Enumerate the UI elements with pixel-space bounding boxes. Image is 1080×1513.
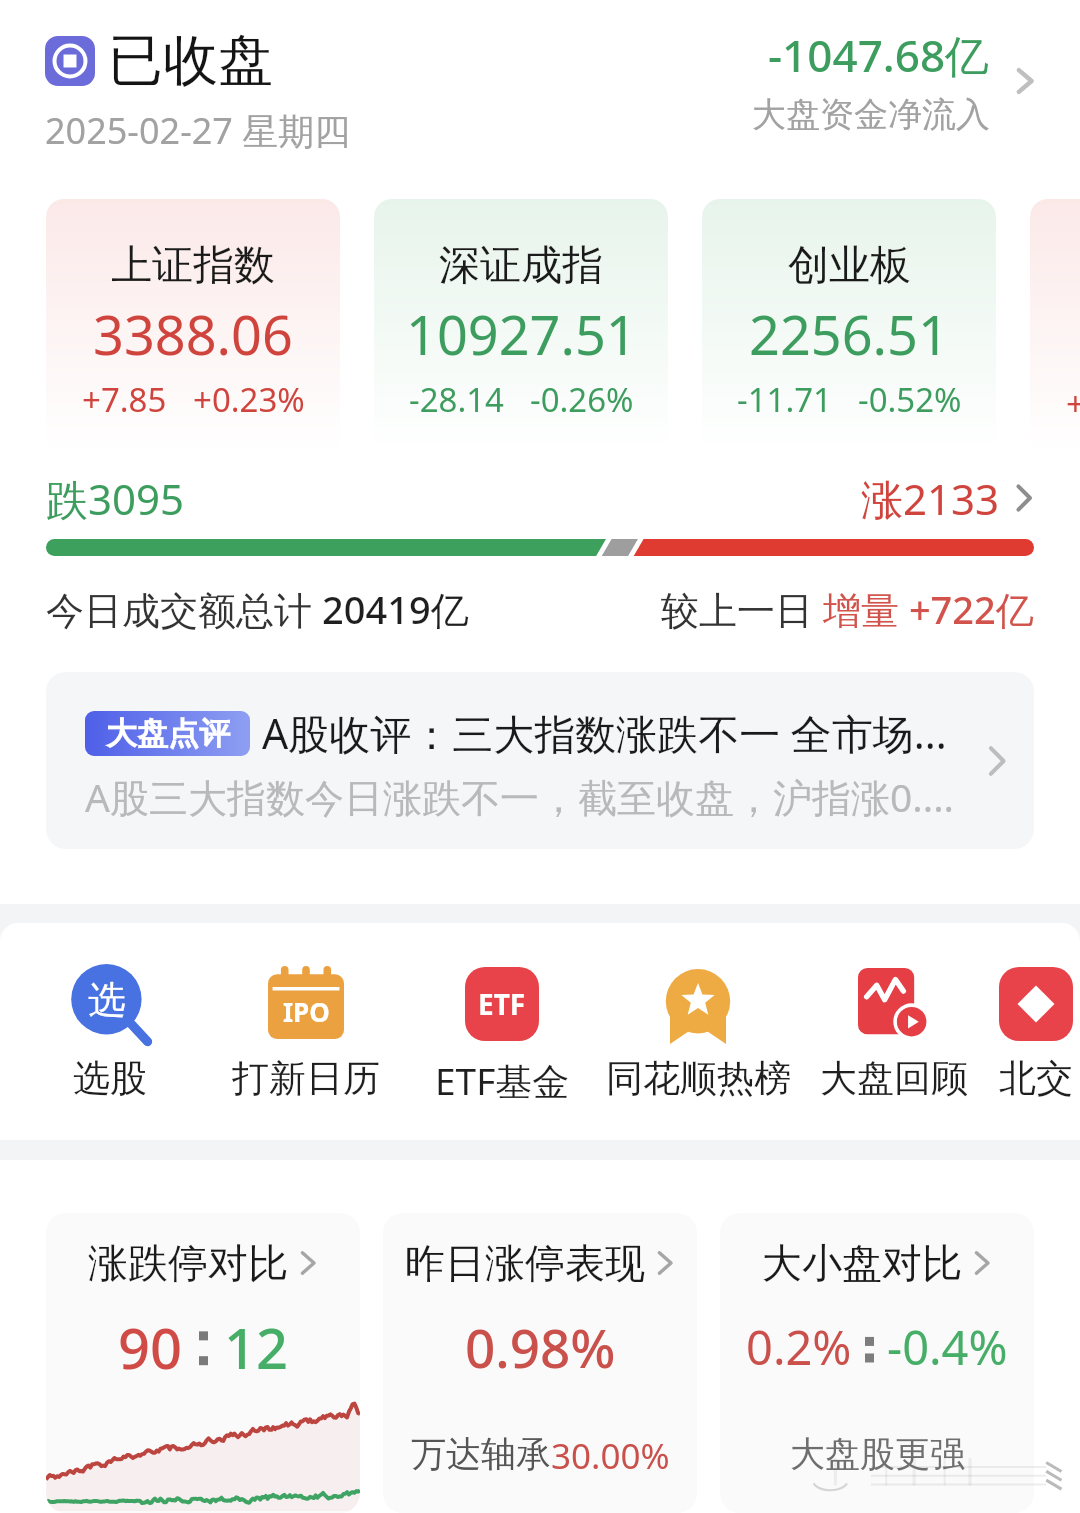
staticText: 90	[118, 1309, 183, 1385]
staticText: 上证指数	[111, 240, 275, 292]
button[interactable]: -1047.68亿	[752, 25, 1036, 136]
staticText: 涨2133	[861, 470, 1000, 527]
staticText: 较上一日	[661, 583, 823, 635]
staticText: 0.2%	[746, 1315, 852, 1379]
staticText: 打新日历	[232, 1055, 380, 1102]
button[interactable]: 昨日涨停表现	[383, 1213, 697, 1513]
staticText: -11.71	[737, 377, 832, 422]
staticText: 创业板	[788, 240, 911, 292]
staticText: 选	[88, 976, 126, 1024]
button[interactable]: 北证50	[1030, 199, 1080, 455]
staticText: 大盘资金净流入	[752, 93, 990, 136]
button[interactable]: 跌3095	[46, 469, 1034, 527]
staticText: 10927.51	[406, 297, 637, 371]
staticText: -0.4%	[887, 1315, 1008, 1379]
staticText: 昨日涨停表现	[405, 1238, 645, 1288]
staticText: -1047.68亿	[768, 25, 990, 85]
button[interactable]: 同花顺热榜	[600, 923, 796, 1140]
staticText: 跌3095	[46, 470, 185, 527]
staticText: 大盘回顾	[820, 1055, 968, 1102]
staticText: A股收评：三大指数涨跌不一 全市场...	[262, 705, 947, 761]
button[interactable]: 深证成指	[374, 199, 668, 455]
staticText: 今日成交额总计	[46, 583, 322, 635]
button[interactable]: 上证指数	[46, 199, 340, 455]
button[interactable]: 大盘回顾	[796, 923, 992, 1140]
staticText: 大盘股更强	[790, 1432, 965, 1476]
button[interactable]: 创业板	[702, 199, 996, 455]
staticText: 万达轴承	[411, 1432, 551, 1476]
staticText: 已收盘	[108, 26, 273, 95]
staticText: 深证成指	[439, 240, 603, 292]
button[interactable]: 选	[12, 923, 208, 1140]
button[interactable]: ETF	[404, 923, 600, 1140]
staticText: +0.23%	[193, 377, 305, 422]
staticText: +7.85	[82, 377, 167, 422]
staticText: 20419亿	[322, 583, 469, 635]
staticText: -0.52%	[858, 377, 962, 422]
button[interactable]: 大小盘对比	[720, 1213, 1034, 1513]
staticText: 选股	[73, 1055, 147, 1102]
staticText: 涨跌停对比	[88, 1238, 288, 1288]
staticText: -0.26%	[530, 377, 634, 422]
staticText: A股三大指数今日涨跌不一，截至收盘，沪指涨0....	[85, 770, 955, 823]
staticText: 3388.06	[93, 297, 293, 371]
staticText: 北交	[999, 1055, 1073, 1102]
staticText: 2256.51	[749, 297, 949, 371]
button[interactable]: 涨跌停对比	[46, 1213, 360, 1513]
staticText: IPO	[283, 994, 330, 1029]
staticText: 2025-02-27 星期四	[45, 106, 351, 155]
staticText: 0.98%	[465, 1311, 616, 1383]
staticText: ETF基金	[435, 1055, 570, 1106]
staticText: 大盘点评	[106, 714, 230, 753]
staticText: 12	[224, 1309, 289, 1385]
staticText: 增量 +722亿	[823, 583, 1034, 635]
staticText: -28.14	[409, 377, 504, 422]
staticText: 同花顺热榜	[606, 1055, 791, 1102]
staticText: +4.31	[1066, 381, 1080, 426]
button[interactable]: 大盘点评	[46, 672, 1034, 849]
staticText: 30.00%	[551, 1432, 670, 1480]
button[interactable]: IPO	[208, 923, 404, 1140]
button[interactable]: 北交	[992, 923, 1080, 1140]
staticText: 大小盘对比	[762, 1238, 962, 1288]
staticText: ETF	[478, 985, 526, 1023]
